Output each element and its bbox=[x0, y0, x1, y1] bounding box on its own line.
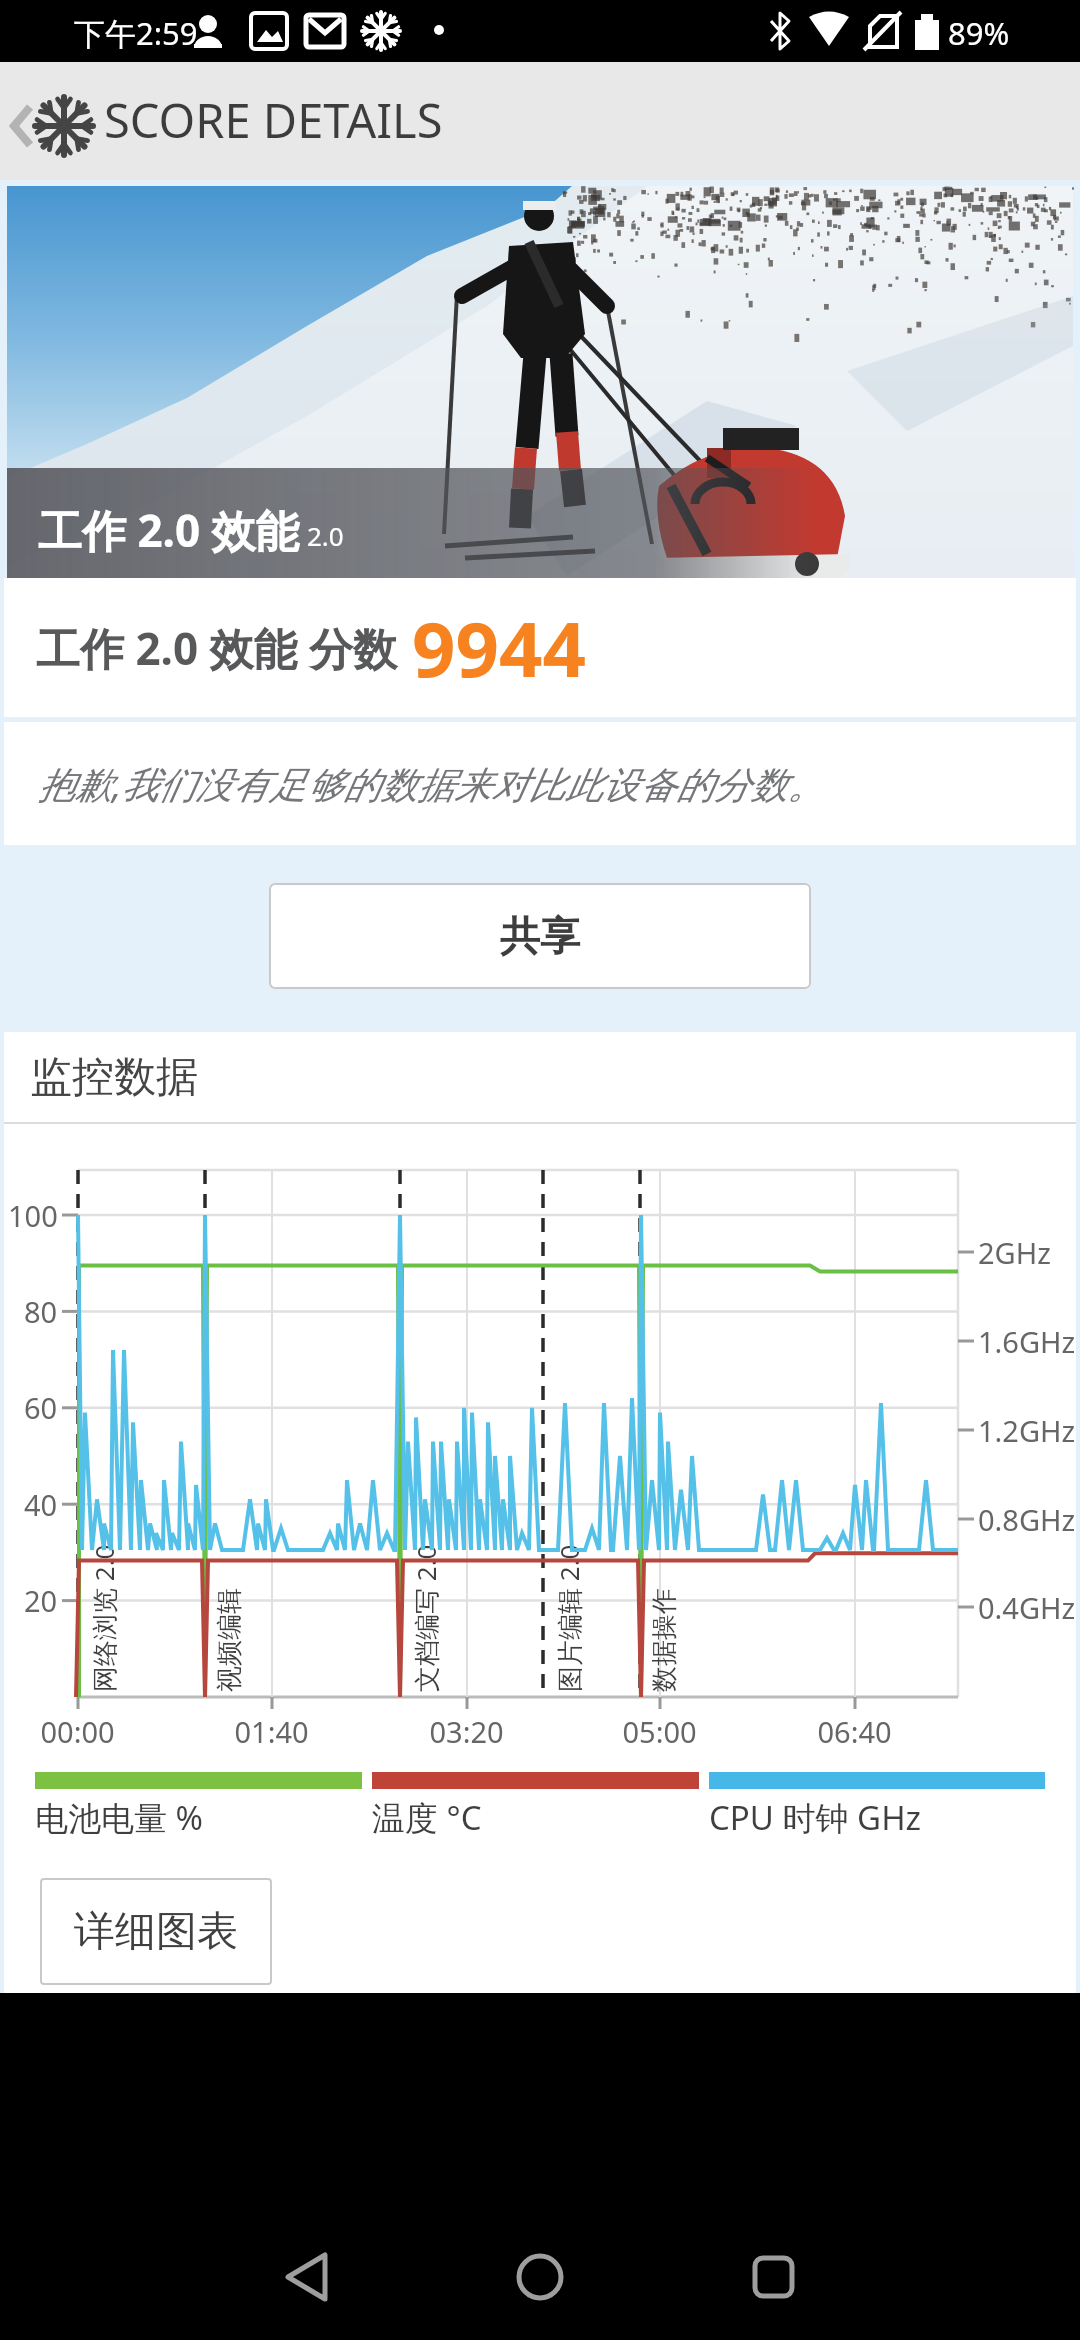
button[interactable]: 共享 bbox=[269, 883, 811, 989]
staticText: 详细图表 bbox=[74, 1906, 238, 1958]
staticText: 2.0 bbox=[307, 518, 344, 553]
staticText: 下午2:59 bbox=[74, 12, 198, 54]
staticText: 监控数据 bbox=[30, 1051, 198, 1104]
staticText: 电池电量 % bbox=[35, 1795, 204, 1840]
staticText: 工作 2.0 效能 分数 bbox=[36, 618, 398, 678]
staticText: CPU 时钟 GHz bbox=[709, 1795, 922, 1840]
button[interactable] bbox=[270, 2246, 344, 2308]
staticText: 工作 2.0 效能 bbox=[38, 500, 300, 560]
button[interactable]: 详细图表 bbox=[40, 1878, 272, 1985]
button[interactable] bbox=[503, 2246, 577, 2308]
staticText: 抱歉,我们没有足够的数据来对比此设备的分数。 bbox=[38, 758, 825, 809]
button[interactable] bbox=[736, 2246, 810, 2308]
staticText: 共享 bbox=[500, 911, 580, 961]
button[interactable] bbox=[0, 62, 40, 180]
staticText: 9944 bbox=[412, 596, 586, 700]
staticText: 89% bbox=[948, 12, 1010, 54]
staticText: 温度 °C bbox=[372, 1795, 482, 1840]
staticText: SCORE DETAILS bbox=[104, 88, 443, 152]
